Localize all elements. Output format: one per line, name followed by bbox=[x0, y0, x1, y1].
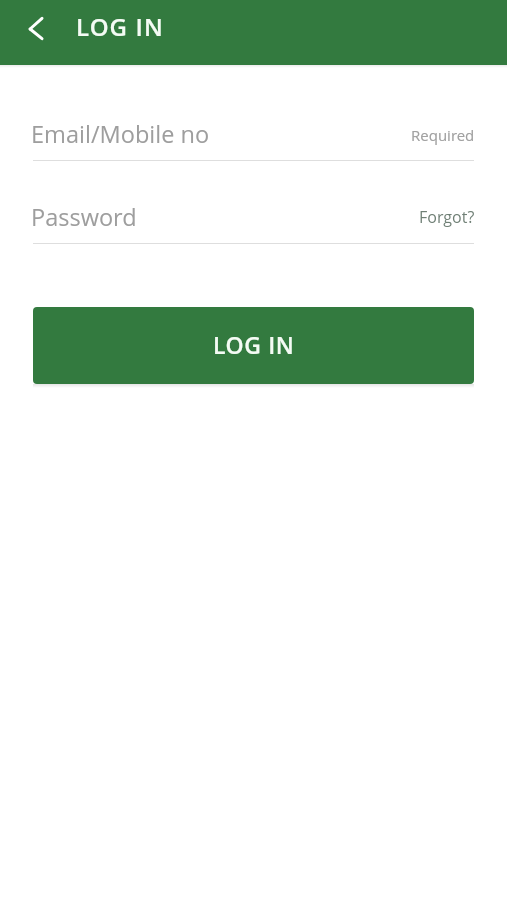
staticText: Email/Mobile no bbox=[31, 118, 210, 150]
button[interactable]: Forgot? bbox=[412, 204, 468, 230]
staticText: Required bbox=[411, 125, 475, 145]
staticText: LOG IN bbox=[76, 10, 164, 43]
staticText: Forgot? bbox=[419, 206, 475, 228]
button[interactable]: Password bbox=[33, 195, 474, 244]
button[interactable]: LOG IN bbox=[33, 307, 474, 384]
button[interactable]: Email/Mobile no bbox=[33, 112, 474, 161]
button[interactable]: Required bbox=[404, 122, 468, 148]
staticText: Password bbox=[31, 201, 137, 233]
staticText: LOG IN bbox=[213, 329, 295, 360]
button[interactable]: Back bbox=[8, 7, 58, 57]
